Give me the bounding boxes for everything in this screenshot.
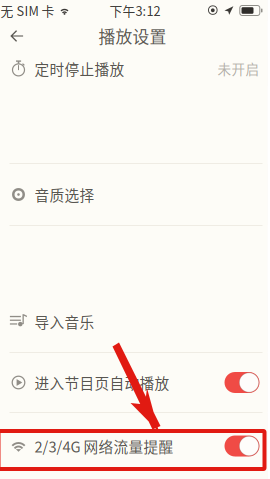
button[interactable]: 定时停止播放 [0,51,267,86]
button[interactable]: 导入音乐 [0,291,267,352]
button[interactable]: 进入节目页自动播放 [0,353,267,412]
button[interactable]: 2/3/4G 网络流量提醒 [0,413,267,479]
staticText: 音质选择 [34,184,94,205]
button[interactable]: Back [0,21,35,51]
button[interactable]: 音质选择 [0,164,267,225]
staticText: 无 SIM 卡 [0,1,54,20]
staticText: 进入节目页自动播放 [34,372,169,393]
staticText: 下午3:12 [109,1,160,20]
staticText: 未开启 [217,59,259,78]
staticText: 定时停止播放 [34,58,124,79]
staticText: 2/3/4G 网络流量提醒 [34,435,173,457]
staticText: 导入音乐 [34,311,94,332]
staticText: 播放设置 [98,24,166,48]
